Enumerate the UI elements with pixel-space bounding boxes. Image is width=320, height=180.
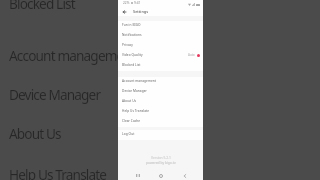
staticText: Help Us Translate: [9, 165, 107, 180]
staticText: Settings: [133, 9, 149, 14]
button[interactable]: Back: [180, 171, 189, 180]
staticText: 22%: [123, 1, 130, 5]
staticText: Device Manager: [122, 89, 147, 93]
staticText: 9:41: [134, 1, 141, 5]
button[interactable]: Help Us Translate: [118, 107, 203, 117]
button[interactable]: Back: [120, 8, 128, 16]
staticText: Account management: [9, 46, 135, 65]
staticText: About Us: [122, 99, 137, 103]
staticText: powered by bigo.tv: [146, 160, 176, 164]
staticText: Auto: [188, 53, 195, 57]
button[interactable]: Blocked List: [118, 61, 203, 71]
staticText: Clear Cache: [122, 119, 141, 123]
button[interactable]: Recents: [133, 171, 142, 180]
button[interactable]: Notifications: [118, 31, 203, 41]
button[interactable]: Video Quality: [118, 51, 203, 61]
button[interactable]: Privacy: [118, 41, 203, 51]
staticText: Notifications: [122, 33, 142, 37]
button[interactable]: Device Manager: [118, 87, 203, 97]
button[interactable]: Home: [156, 171, 165, 180]
staticText: Fun in BIGO: [122, 23, 141, 27]
button[interactable]: Account management: [118, 77, 203, 87]
staticText: Help Us Translate: [122, 109, 150, 113]
staticText: Blocked List: [122, 63, 141, 67]
staticText: Log Out: [122, 132, 135, 136]
button[interactable]: Log Out: [118, 130, 203, 140]
staticText: Version 5.2.1: [151, 155, 171, 159]
staticText: About Us: [9, 124, 61, 143]
button[interactable]: About Us: [118, 97, 203, 107]
staticText: Privacy: [122, 43, 133, 47]
button[interactable]: Fun in BIGO: [118, 21, 203, 31]
button[interactable]: Clear Cache: [118, 117, 203, 127]
staticText: Device Manager: [9, 85, 101, 104]
staticText: Blocked List: [9, 0, 75, 13]
staticText: Account management: [122, 79, 157, 83]
staticText: Video Quality: [122, 53, 143, 57]
